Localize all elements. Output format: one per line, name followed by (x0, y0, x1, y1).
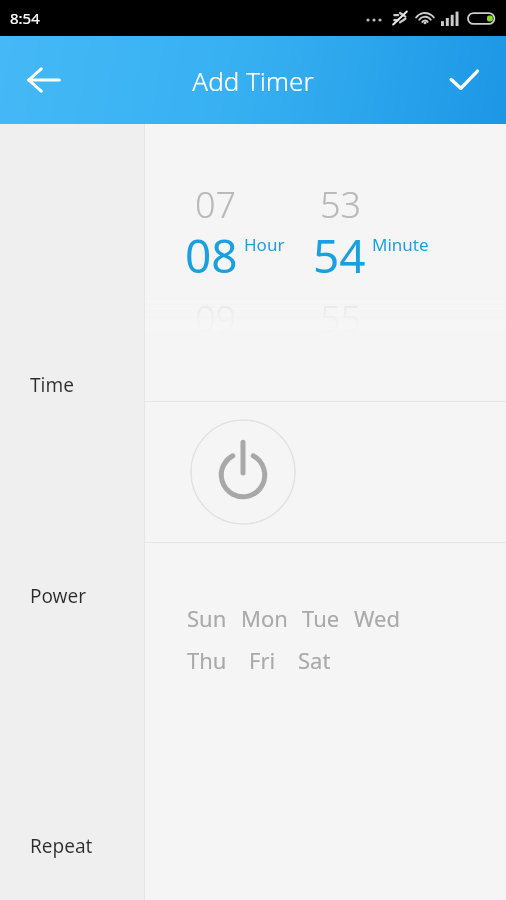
staticText: Wed (354, 603, 400, 633)
staticText: Power (30, 583, 87, 609)
staticText: 53 (320, 180, 362, 229)
staticText: Sun (187, 603, 227, 633)
button[interactable]: Wed (354, 603, 400, 633)
staticText: Fri (249, 645, 276, 675)
staticText: Minute (372, 233, 429, 256)
staticText: 08 (185, 224, 238, 286)
button[interactable]: Sun (187, 603, 227, 633)
staticText: Repeat (30, 833, 93, 859)
staticText: 54 (313, 224, 366, 286)
button[interactable]: Thu (187, 645, 227, 675)
staticText: Mon (241, 603, 288, 633)
button[interactable]: Mon (241, 603, 288, 633)
staticText: Tue (302, 603, 340, 633)
staticText: 07 (195, 180, 237, 229)
button[interactable]: Tue (302, 603, 340, 633)
staticText: Hour (244, 233, 285, 256)
button[interactable]: 08 (185, 224, 335, 286)
button[interactable]: Fri (249, 645, 276, 675)
button[interactable]: Confirm (422, 36, 506, 124)
button[interactable]: 54 (313, 224, 483, 286)
staticText: Time (30, 372, 74, 398)
staticText: 8:54 (10, 8, 40, 28)
staticText: Add Timer (192, 63, 314, 98)
staticText: Sat (298, 645, 331, 675)
staticText: Thu (187, 645, 227, 675)
button[interactable]: Power toggle (190, 419, 296, 525)
button[interactable]: Sat (298, 645, 331, 675)
button[interactable]: Back (0, 36, 88, 124)
